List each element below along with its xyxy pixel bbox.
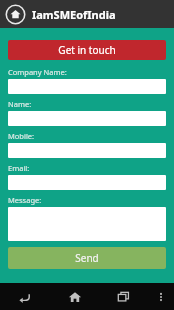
staticText: Name:	[8, 99, 32, 109]
button[interactable]: Home	[5, 4, 26, 25]
staticText: Message:	[8, 195, 42, 205]
staticText: IamSMEofIndia	[32, 7, 116, 22]
button[interactable]: Home	[50, 283, 99, 310]
staticText: Mobile:	[8, 131, 35, 141]
button[interactable]: More options	[148, 283, 174, 310]
button[interactable]: Send	[8, 247, 166, 269]
staticText: Company Name:	[8, 67, 67, 77]
button[interactable]: Back	[0, 283, 50, 310]
staticText: Send	[75, 251, 99, 265]
staticText: Get in touch	[58, 43, 116, 57]
button[interactable]: Get in touch	[8, 40, 166, 60]
staticText: Email:	[8, 163, 30, 173]
button[interactable]: Recent apps	[99, 283, 148, 310]
